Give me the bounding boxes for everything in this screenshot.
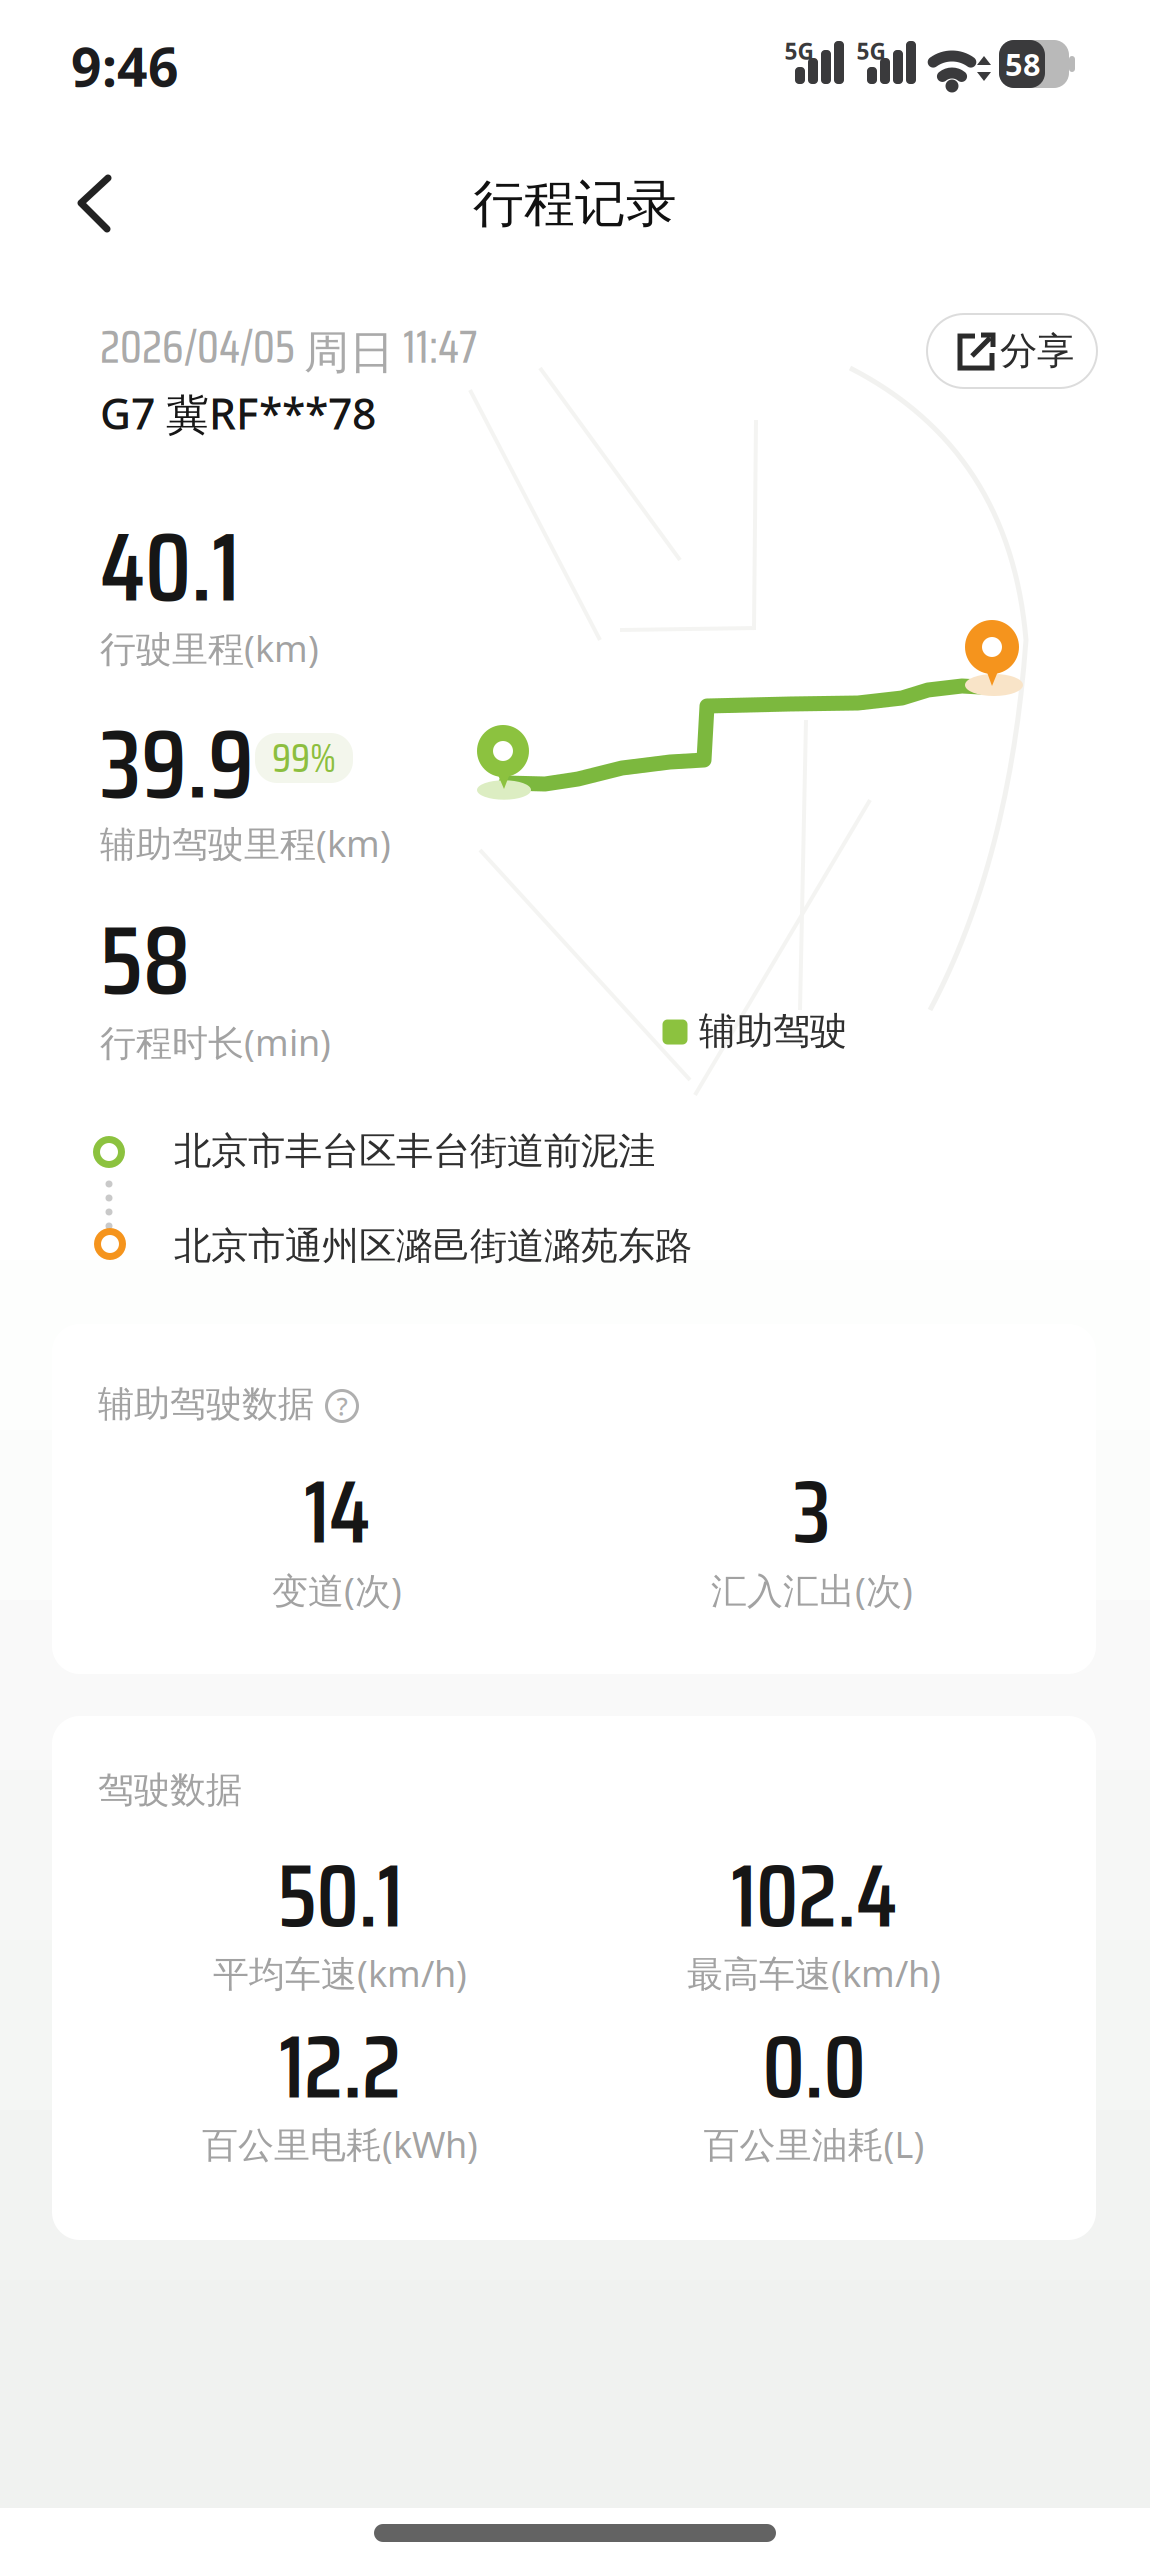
- staticText: 汇入汇出(次): [711, 1566, 913, 1614]
- staticText: 58: [100, 884, 190, 1035]
- staticText: 5G: [784, 36, 813, 66]
- staticText: 行程记录: [473, 173, 677, 235]
- staticText: 北京市丰台区丰台街道前泥洼: [174, 1128, 655, 1174]
- button[interactable]: Share: [927, 314, 1097, 388]
- staticText: 北京市通州区潞邑街道潞苑东路: [174, 1223, 692, 1269]
- staticText: 最高车速(km/h): [687, 1949, 941, 1997]
- staticText: 3: [793, 1443, 831, 1581]
- staticText: 0.0: [762, 1998, 865, 2136]
- staticText: 5G: [856, 36, 885, 66]
- staticText: 2026/04/05 周日 11:47: [100, 311, 477, 383]
- staticText: 行程时长(min): [100, 1018, 331, 1066]
- staticText: 辅助驾驶: [699, 1008, 847, 1054]
- button[interactable]: Help: [322, 1386, 362, 1426]
- staticText: 9:46: [71, 31, 179, 101]
- staticText: 14: [304, 1443, 370, 1581]
- staticText: 辅助驾驶数据: [98, 1382, 314, 1426]
- staticText: 40.1: [100, 491, 240, 642]
- staticText: 39.9: [100, 688, 254, 839]
- staticText: 50.1: [277, 1827, 402, 1965]
- staticText: 百公里电耗(kWh): [202, 2120, 478, 2168]
- staticText: 驾驶数据: [98, 1768, 242, 1812]
- staticText: 分享: [1000, 328, 1074, 374]
- staticText: 58: [1005, 44, 1041, 84]
- staticText: ?: [336, 1389, 347, 1423]
- staticText: G7 冀RF***78: [100, 385, 376, 441]
- staticText: 行驶里程(km): [100, 624, 319, 672]
- staticText: 99%: [272, 726, 336, 789]
- button[interactable]: Back: [54, 163, 134, 243]
- staticText: 辅助驾驶里程(km): [100, 819, 391, 867]
- staticText: 变道(次): [272, 1566, 402, 1614]
- staticText: 百公里油耗(L): [703, 2120, 924, 2168]
- staticText: 102.4: [731, 1827, 897, 1965]
- staticText: 平均车速(km/h): [213, 1949, 467, 1997]
- staticText: 12.2: [279, 1998, 401, 2136]
